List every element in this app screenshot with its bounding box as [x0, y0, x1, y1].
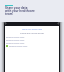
- staticText: Regional Health Clinic: [6, 36, 25, 38]
- staticText: Share your data with your healthcare tea…: [5, 6, 35, 16]
- button[interactable]: Regional Health Clinic: [6, 38, 58, 41]
- button[interactable]: Regional Health Clinic: [6, 35, 58, 38]
- staticText: Regional Health Clinic: [6, 42, 25, 44]
- staticText: Choose who can see records: [5, 32, 59, 34]
- staticText: Share your health data: [5, 28, 59, 31]
- button[interactable]: Regional Health Clinic: [6, 41, 58, 44]
- button[interactable]: Connected: [6, 44, 58, 47]
- staticText: Regional Health Clinic: [6, 39, 25, 41]
- other: Connected: [6, 45, 8, 47]
- staticText: Regional Health Clinic: [9, 45, 28, 47]
